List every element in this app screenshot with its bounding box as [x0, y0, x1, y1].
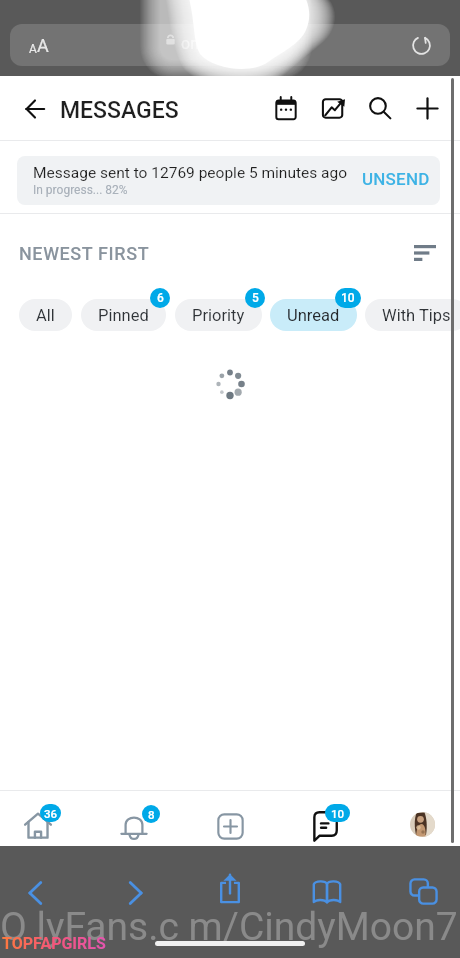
button[interactable]: Unread [270, 299, 357, 331]
staticText: Priority [192, 306, 245, 325]
button[interactable]: Address bar [10, 24, 450, 66]
staticText: 5 [252, 291, 259, 305]
button[interactable]: Notifications [92, 791, 184, 846]
staticText: onlyfans.com [181, 34, 278, 53]
staticText: TOPFAPGIRLS [2, 934, 106, 953]
staticText: With Tips [382, 306, 451, 325]
staticText: A [37, 35, 49, 56]
staticText: MESSAGES [60, 97, 179, 124]
staticText: UNSEND [362, 169, 430, 189]
button[interactable]: With Tips [365, 299, 460, 331]
staticText: 6 [157, 291, 164, 305]
staticText: In progress... 82% [33, 183, 128, 197]
button[interactable]: All [19, 299, 72, 331]
staticText: Unread [287, 306, 340, 325]
button[interactable]: Pinned [81, 299, 166, 331]
staticText: A [29, 42, 37, 56]
staticText: 36 [44, 807, 58, 820]
button[interactable]: Sort options [408, 236, 442, 270]
staticText: Message sent to 12769 people 5 minutes a… [33, 164, 348, 182]
button[interactable]: Statistics [315, 90, 351, 126]
button[interactable]: Back [0, 858, 90, 906]
button[interactable]: Bookmarks [282, 858, 372, 906]
staticText: NEWEST FIRST [19, 243, 150, 264]
button[interactable]: Share [186, 858, 276, 906]
staticText: 10 [331, 807, 345, 820]
button[interactable]: Back [16, 90, 54, 128]
staticText: All [36, 306, 55, 325]
button[interactable]: Add post [184, 791, 276, 846]
staticText: 8 [148, 808, 155, 821]
button[interactable]: Messages [276, 791, 368, 846]
button[interactable]: Forward [92, 858, 182, 906]
button[interactable]: UNSEND [354, 160, 438, 197]
button[interactable]: Priority [175, 299, 262, 331]
button[interactable]: Profile [368, 791, 460, 846]
staticText: Pinned [98, 306, 149, 325]
staticText: 10 [341, 291, 355, 305]
button[interactable]: Tabs [375, 858, 460, 906]
button[interactable]: Home [0, 791, 92, 846]
button[interactable]: Search [362, 90, 398, 126]
button[interactable]: New message [409, 90, 445, 126]
staticText: O lyFans.c m/CindyMoon7 [0, 904, 458, 950]
button[interactable]: Calendar [268, 90, 304, 126]
